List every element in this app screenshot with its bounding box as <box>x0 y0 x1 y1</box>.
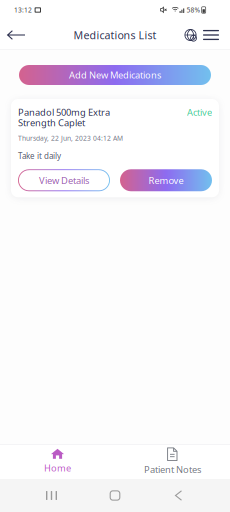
staticText: View Details <box>39 174 89 186</box>
button[interactable]: Language <box>181 22 200 48</box>
staticText: Remove <box>148 174 183 186</box>
button[interactable]: Add New Medications <box>19 65 211 85</box>
button[interactable]: Home <box>108 483 121 507</box>
button[interactable]: Back <box>172 483 185 507</box>
staticText: 13:12 <box>14 6 32 14</box>
button[interactable]: View Details <box>18 169 110 191</box>
staticText: 58% <box>186 6 200 14</box>
staticText: Strength Caplet <box>18 116 85 129</box>
button[interactable]: Remove <box>120 169 212 191</box>
staticText: Panadol 500mg Extra <box>18 106 110 118</box>
staticText: Thursday, 22 Jun, 2023 04:12 AM <box>18 134 123 143</box>
staticText: Home <box>44 462 71 474</box>
button[interactable]: Home <box>0 444 115 479</box>
staticText: Active <box>187 106 212 118</box>
button[interactable]: Recents <box>45 483 58 507</box>
staticText: Medications List <box>73 28 156 42</box>
staticText: Patient Notes <box>144 463 201 476</box>
staticText: Add New Medications <box>69 69 161 81</box>
button[interactable]: Back <box>0 22 32 48</box>
button[interactable]: Menu <box>200 22 230 48</box>
staticText: Take it daily <box>18 151 61 161</box>
button[interactable]: Patient Notes <box>115 444 230 479</box>
